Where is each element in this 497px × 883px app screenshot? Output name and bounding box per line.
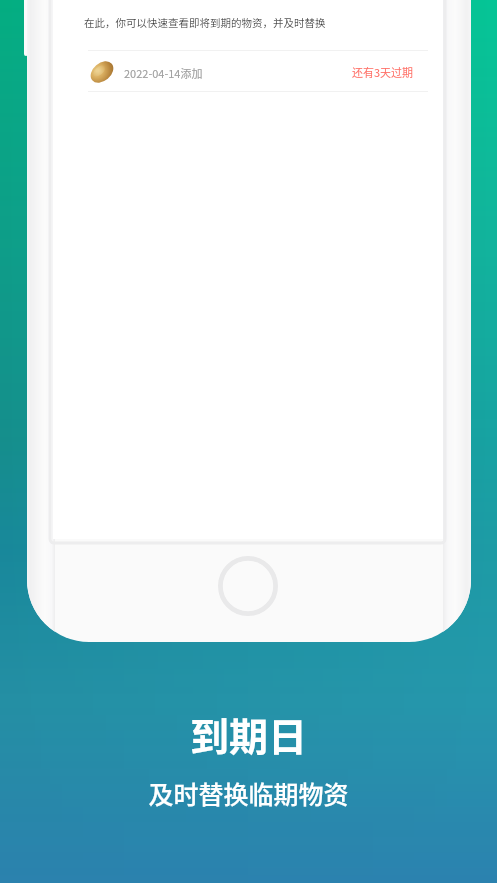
staticText: 到期日: [0, 706, 497, 762]
staticText: 还有3天过期: [352, 64, 414, 80]
button[interactable]: Potato item: [88, 51, 428, 92]
other: Potato item: [89, 59, 115, 85]
staticText: 及时替换临期物资: [0, 775, 497, 811]
staticText: 2022-04-14添加: [124, 65, 203, 81]
staticText: 在此，你可以快速查看即将到期的物资，并及时替换: [84, 15, 326, 30]
